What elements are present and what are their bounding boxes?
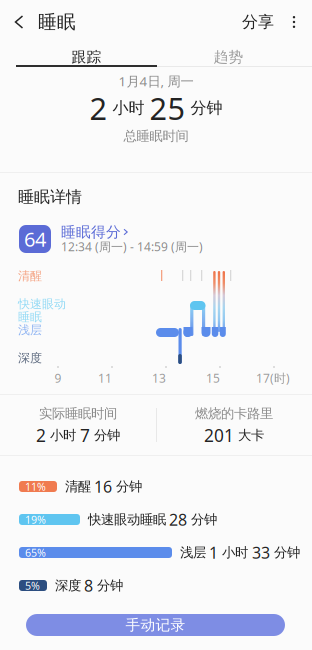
staticText: 19%	[25, 512, 46, 527]
staticText: 大卡	[234, 427, 264, 443]
staticText: 7	[80, 424, 90, 447]
staticText: 13	[152, 370, 166, 386]
button[interactable]: 64	[0, 223, 312, 255]
staticText: 15	[206, 370, 220, 386]
staticText: 深度	[18, 351, 42, 365]
staticText: 跟踪	[71, 48, 101, 66]
staticText: 9	[54, 370, 61, 386]
staticText: 64	[24, 226, 46, 252]
button[interactable]: 返回	[4, 4, 34, 40]
staticText: 33	[252, 542, 270, 563]
staticText: 11%	[25, 479, 46, 494]
button[interactable]: 更多	[282, 7, 306, 37]
staticText: 小时	[46, 427, 80, 443]
staticText: 11	[98, 370, 112, 386]
staticText: 分钟	[187, 511, 217, 528]
staticText: 65%	[25, 545, 46, 560]
staticText: 8	[84, 575, 93, 596]
staticText: 快速眼动睡眠	[88, 511, 166, 528]
staticText: 总睡眠时间	[123, 128, 188, 144]
staticText: 分钟	[185, 98, 222, 118]
button[interactable]: 分享	[240, 7, 276, 37]
staticText: 分享	[242, 12, 274, 32]
staticText: 2	[36, 424, 46, 447]
staticText: 25	[149, 88, 185, 128]
staticText: 16	[94, 476, 112, 497]
staticText: 清醒	[18, 269, 42, 283]
staticText: 清醒	[65, 478, 91, 495]
staticText: 燃烧的卡路里	[195, 405, 273, 422]
staticText: 浅层	[18, 323, 42, 337]
button[interactable]: 睡眠详情	[18, 189, 138, 205]
staticText: 小时	[218, 544, 252, 561]
staticText: 睡眠	[38, 10, 76, 33]
button[interactable]: 趋势	[158, 50, 299, 64]
staticText: 2	[89, 88, 107, 128]
staticText: 快速眼动	[18, 297, 66, 311]
staticText: 分钟	[90, 427, 120, 443]
staticText: 分钟	[112, 478, 142, 495]
staticText: 趋势	[213, 48, 243, 66]
staticText: 睡眠得分	[61, 223, 121, 241]
button[interactable]: 手动记录	[26, 614, 285, 636]
button[interactable]: 跟踪	[16, 44, 157, 68]
staticText: 实际睡眠时间	[39, 405, 117, 422]
staticText: 分钟	[93, 577, 123, 594]
staticText: 手动记录	[125, 616, 185, 634]
staticText: 深度	[55, 577, 81, 594]
staticText: 28	[169, 509, 187, 530]
staticText: 睡眠	[18, 310, 42, 324]
staticText: 201	[204, 424, 234, 447]
staticText: 浅层	[180, 544, 206, 561]
staticText: 5%	[25, 578, 40, 593]
staticText: 分钟	[270, 544, 300, 561]
staticText: 17(时)	[256, 370, 290, 386]
staticText: 小时	[107, 98, 149, 118]
staticText: 1	[209, 542, 218, 563]
staticText: 12:34 (周一) - 14:59 (周一)	[61, 238, 203, 254]
staticText: 睡眠详情	[18, 187, 82, 207]
button[interactable]: 睡眠	[38, 12, 78, 32]
staticText: 1月4日, 周一	[118, 72, 193, 90]
